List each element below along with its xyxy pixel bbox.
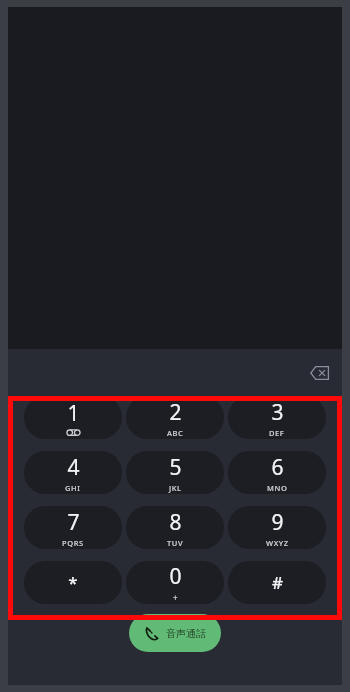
staticText: MNO <box>267 483 288 493</box>
staticText: 9 <box>271 508 284 537</box>
staticText: 4 <box>67 453 80 482</box>
button[interactable]: # <box>228 561 326 604</box>
button[interactable]: 9 <box>228 506 326 549</box>
staticText: 3 <box>271 398 284 427</box>
button[interactable]: Backspace <box>302 356 336 390</box>
staticText: GHI <box>65 483 81 493</box>
button[interactable]: 4 <box>24 451 122 494</box>
staticText: 5 <box>169 453 182 482</box>
staticText: PQRS <box>62 538 84 548</box>
button[interactable]: 3 <box>228 396 326 439</box>
staticText: 音声通話 <box>166 627 206 640</box>
button[interactable]: 音声通話 <box>129 614 221 652</box>
staticText: 2 <box>169 398 182 427</box>
staticText: WXYZ <box>266 538 289 548</box>
button[interactable]: 1 <box>24 396 122 439</box>
button[interactable]: * <box>24 561 122 604</box>
button[interactable]: 5 <box>126 451 224 494</box>
staticText: 0 <box>169 562 182 591</box>
button[interactable]: 0 <box>126 561 224 604</box>
button[interactable]: 8 <box>126 506 224 549</box>
staticText: * <box>68 571 78 594</box>
staticText: 7 <box>67 508 80 537</box>
staticText: 1 <box>67 399 80 428</box>
button[interactable]: 2 <box>126 396 224 439</box>
staticText: ABC <box>167 428 184 438</box>
staticText: 6 <box>271 453 284 482</box>
button[interactable]: 6 <box>228 451 326 494</box>
staticText: JKL <box>169 483 182 493</box>
staticText: 8 <box>169 508 182 537</box>
staticText: TUV <box>167 538 184 548</box>
staticText: + <box>173 592 178 603</box>
button[interactable]: 7 <box>24 506 122 549</box>
staticText: # <box>272 571 283 594</box>
staticText: DEF <box>269 428 285 438</box>
